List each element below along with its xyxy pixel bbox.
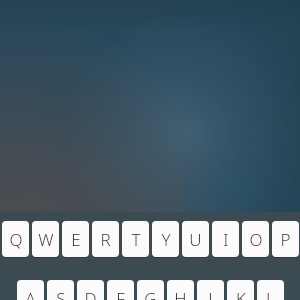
button[interactable]: H [167,280,194,300]
button[interactable]: K [227,280,254,300]
staticText: O [249,228,263,251]
staticText: P [280,228,291,251]
staticText: J [208,287,213,300]
staticText: F [116,287,125,300]
button[interactable]: R [92,221,119,257]
button[interactable]: Dismiss keyboard [0,0,300,212]
button[interactable]: A [17,280,44,300]
staticText: H [174,287,187,300]
staticText: G [144,287,157,300]
button[interactable]: G [137,280,164,300]
button[interactable]: I [212,221,239,257]
button[interactable]: Y [152,221,179,257]
button[interactable]: O [242,221,269,257]
button[interactable]: L [257,280,284,300]
button[interactable]: E [62,221,89,257]
staticText: Y [161,228,171,251]
button[interactable]: P [272,221,299,257]
button[interactable]: T [122,221,149,257]
staticText: E [71,228,81,251]
button[interactable]: W [32,221,59,257]
staticText: Q [9,228,23,251]
button[interactable]: U [182,221,209,257]
staticText: A [25,287,36,300]
button[interactable]: Q [2,221,29,257]
button[interactable]: S [47,280,74,300]
staticText: W [38,228,54,251]
staticText: R [100,228,111,251]
staticText: L [266,287,275,300]
staticText: U [189,228,202,251]
staticText: D [84,287,97,300]
staticText: T [131,228,141,251]
button[interactable]: F [107,280,134,300]
button[interactable]: J [197,280,224,300]
staticText: I [223,228,229,251]
staticText: K [236,287,246,300]
staticText: S [56,287,66,300]
button[interactable]: D [77,280,104,300]
